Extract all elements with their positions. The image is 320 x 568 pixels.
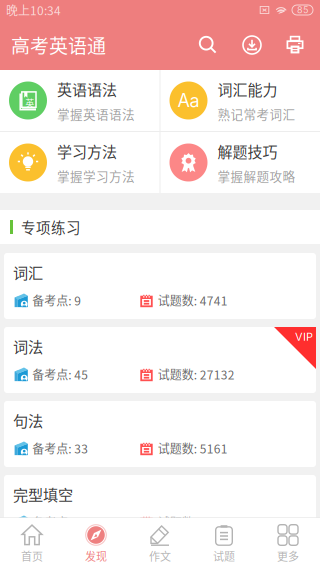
button[interactable]: 打印 xyxy=(274,20,316,70)
staticText: VIP xyxy=(295,330,313,343)
staticText: 学习方法 xyxy=(57,140,117,162)
staticText: 词法 xyxy=(13,335,43,357)
button[interactable]: 发现 xyxy=(64,518,128,568)
staticText: 作文 xyxy=(149,548,171,564)
staticText: 英语语法 xyxy=(57,78,117,100)
staticText: 试题 xyxy=(213,548,235,564)
staticText: 词汇能力 xyxy=(217,78,277,100)
staticText: 掌握学习方法 xyxy=(57,167,135,185)
button[interactable]: 首页 xyxy=(0,518,64,568)
staticText: 完型填空 xyxy=(13,483,73,505)
button[interactable]: 词汇 xyxy=(4,253,316,319)
staticText: 更多 xyxy=(277,548,299,564)
button[interactable]: 完型填空 xyxy=(4,475,316,541)
staticText: 晚上10:34 xyxy=(6,1,61,19)
staticText: 试题数: 4741 xyxy=(158,291,228,309)
staticText: 备考点: 9 xyxy=(32,291,81,309)
button[interactable]: 搜索 xyxy=(186,20,230,70)
staticText: 词汇 xyxy=(13,261,43,283)
staticText: 熟记常考词汇 xyxy=(217,105,295,123)
staticText: 掌握英语语法 xyxy=(57,105,135,123)
button[interactable]: 试题 xyxy=(192,518,256,568)
button[interactable]: Aa xyxy=(160,70,320,131)
button[interactable]: VIP xyxy=(4,327,316,393)
staticText: 高考英语通 xyxy=(11,31,106,59)
staticText: 备考点: 33 xyxy=(32,439,88,457)
staticText: 备考点: 45 xyxy=(32,365,88,383)
staticText: 试题数: 5161 xyxy=(158,439,228,457)
button[interactable]: 作文 xyxy=(128,518,192,568)
button[interactable]: 下载 xyxy=(230,20,274,70)
staticText: 掌握解题攻略 xyxy=(217,167,295,185)
button[interactable]: 句法 xyxy=(4,401,316,467)
staticText: 发现 xyxy=(85,548,107,564)
staticText: 首页 xyxy=(21,548,43,564)
staticText: 备考点: 21 xyxy=(32,513,88,531)
button[interactable]: 更多 xyxy=(256,518,320,568)
staticText: 句法 xyxy=(13,409,43,431)
staticText: 试题数: 27132 xyxy=(158,365,235,383)
button[interactable]: 英 xyxy=(0,70,159,131)
staticText: 85 xyxy=(297,5,308,15)
button[interactable]: 解题技巧 xyxy=(160,132,320,193)
staticText: 专项练习 xyxy=(21,216,81,237)
staticText: 英 xyxy=(25,96,34,109)
staticText: 试题数: 3300 xyxy=(158,513,228,531)
button[interactable]: 学习方法 xyxy=(0,132,159,193)
staticText: 解题技巧 xyxy=(217,140,277,162)
staticText: Aa xyxy=(177,90,199,111)
